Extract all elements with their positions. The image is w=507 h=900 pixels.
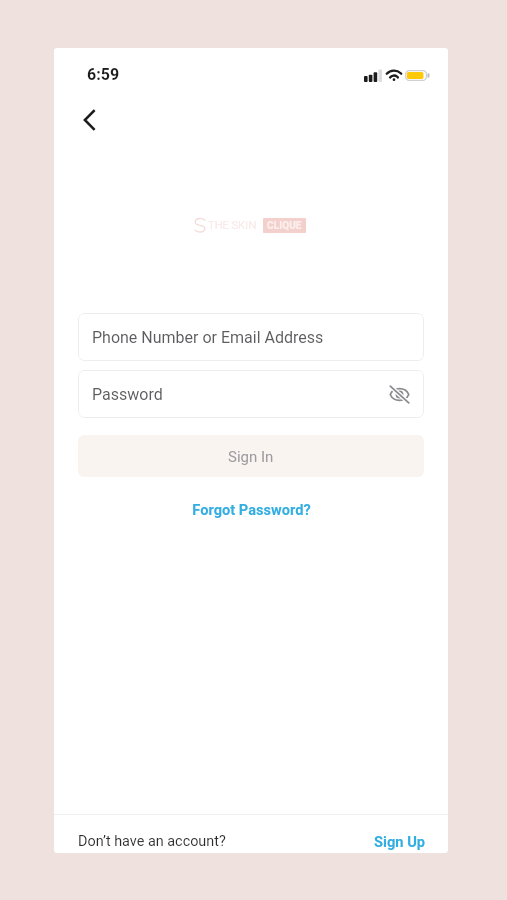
staticText: Password [92, 385, 163, 404]
button[interactable]: Show password [384, 379, 414, 409]
button[interactable]: Back [70, 100, 110, 140]
staticText: THE SKIN [208, 219, 257, 232]
staticText: CLIQUE [267, 220, 302, 232]
staticText: Phone Number or Email Address [92, 328, 324, 347]
staticText: Forgot Password? [192, 501, 311, 518]
button[interactable]: Sign In [78, 435, 424, 477]
staticText: 6:59 [87, 65, 120, 84]
button[interactable]: Sign Up [374, 833, 426, 850]
button[interactable]: Forgot Password? [54, 496, 448, 522]
staticText: Sign Up [374, 833, 426, 850]
button[interactable]: Phone Number or Email Address [78, 313, 424, 361]
button[interactable]: Password [78, 370, 424, 418]
staticText: Don’t have an account? [78, 833, 226, 850]
staticText: Sign In [228, 448, 274, 466]
